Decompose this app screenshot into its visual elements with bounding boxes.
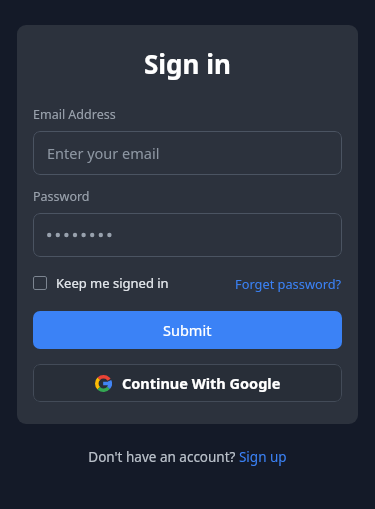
staticText: Forget password? [235, 275, 342, 292]
button[interactable]: Don't have an account? Sign up [82, 446, 293, 468]
button[interactable]: Enter your email [33, 131, 342, 175]
button[interactable]: Forget password? [235, 275, 342, 292]
staticText: Don't have an account? Sign up [88, 448, 287, 466]
staticText: Sign in [144, 46, 231, 81]
button[interactable]: Keep me signed in [33, 274, 169, 292]
button[interactable]: Submit [33, 311, 342, 349]
staticText: Email Address [33, 106, 116, 123]
staticText: Submit [163, 320, 212, 340]
staticText: Keep me signed in [56, 274, 169, 292]
staticText: Enter your email [47, 143, 160, 163]
staticText: Password [33, 188, 90, 205]
button[interactable]: Continue With Google [33, 364, 342, 402]
staticText: Continue With Google [122, 373, 281, 393]
button[interactable] [33, 213, 342, 257]
